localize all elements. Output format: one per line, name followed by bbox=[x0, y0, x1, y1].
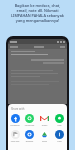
button[interactable]: Copy link bbox=[8, 130, 22, 143]
staticText: Browser bbox=[22, 140, 37, 143]
staticText: Drive bbox=[37, 140, 52, 143]
button[interactable]: Facebook bbox=[8, 114, 22, 127]
staticText: WhatsApp bbox=[22, 124, 37, 127]
staticText: Share with bbox=[11, 107, 25, 111]
button[interactable]: Save bbox=[52, 130, 67, 143]
button[interactable]: Browser bbox=[22, 130, 37, 143]
staticText: Gmail bbox=[37, 124, 52, 127]
button[interactable]: Line bbox=[52, 114, 67, 127]
staticText: Bagikan ke medsos, chat, bbox=[4, 3, 71, 8]
staticText: Copy link bbox=[8, 140, 22, 143]
staticText: email, note dll. Nikmati bbox=[4, 8, 71, 13]
staticText: Line bbox=[52, 124, 67, 127]
button[interactable]: Drive bbox=[37, 130, 52, 143]
button[interactable]: Gmail bbox=[37, 114, 52, 127]
staticText: Save bbox=[52, 140, 67, 143]
staticText: Facebook bbox=[8, 124, 22, 127]
staticText: LIMPAHAN PAHALA sebanyak bbox=[4, 13, 71, 18]
staticText: yang mengamalkannya! bbox=[4, 18, 71, 23]
button[interactable]: WhatsApp bbox=[22, 114, 37, 127]
